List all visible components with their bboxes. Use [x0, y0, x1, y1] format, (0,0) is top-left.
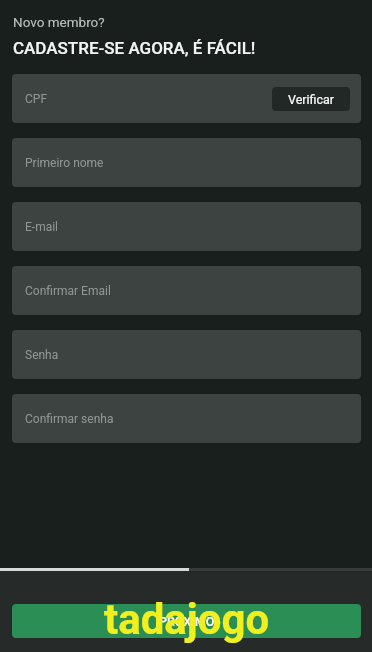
button[interactable]: Confirmar senha: [12, 394, 361, 443]
button[interactable]: CPF: [12, 74, 361, 123]
staticText: Verificar: [288, 92, 335, 107]
button[interactable]: E-mail: [12, 202, 361, 251]
staticText: CPF: [25, 92, 48, 106]
staticText: Novo membro?: [13, 14, 105, 30]
staticText: Senha: [25, 348, 59, 362]
staticText: Confirmar senha: [25, 412, 114, 426]
staticText: Primeiro nome: [25, 156, 104, 170]
staticText: Confirmar Email: [25, 284, 111, 298]
staticText: E-mail: [25, 220, 59, 234]
button[interactable]: Primeiro nome: [12, 138, 361, 187]
staticText: PRÓXIMO: [159, 614, 215, 629]
staticText: CADASTRE-SE AGORA, É FÁCIL!: [13, 38, 256, 58]
staticText: tadajogo: [104, 595, 270, 644]
button[interactable]: Senha: [12, 330, 361, 379]
button[interactable]: Confirmar Email: [12, 266, 361, 315]
button[interactable]: Verificar: [272, 87, 350, 111]
button[interactable]: PRÓXIMO: [12, 604, 361, 638]
